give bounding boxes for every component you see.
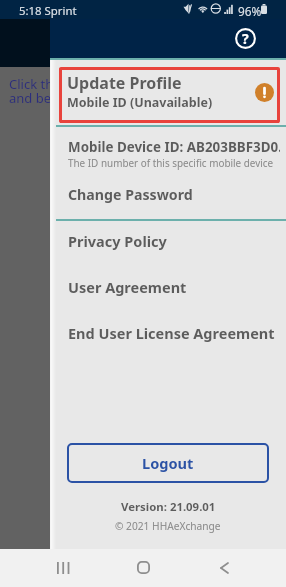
staticText: Privacy Policy [68,231,167,251]
staticText: 5:18 Sprint [19,3,77,19]
staticText: © 2021 HHAeXchange [115,519,221,533]
staticText: 96% [238,3,262,19]
button[interactable]: End User License Agreement [50,313,286,359]
button[interactable]: User Agreement [50,267,286,313]
staticText: Version: 21.09.01 [121,499,216,515]
staticText: User Agreement [68,277,187,297]
button[interactable]: Help [234,27,256,49]
button[interactable]: Update Profile [59,67,280,123]
staticText: End User License Agreement [68,323,275,343]
button[interactable]: Back [207,551,241,585]
staticText: ? [242,29,249,48]
staticText: Click the [9,75,61,93]
staticText: and bec [9,89,58,107]
staticText: The ID number of this specific mobile de… [68,156,274,169]
button[interactable]: Home [126,550,160,584]
staticText: Update Profile [67,72,182,94]
staticText: Mobile Device ID: AB203BBF3D0... [68,138,280,156]
button[interactable]: Mobile Device ID: AB203BBF3D0... [50,127,286,170]
button[interactable]: Recents [46,551,80,585]
staticText: Logout [142,453,194,473]
staticText: Change Password [68,185,193,204]
staticText: Mobile ID (Unavailable) [67,94,213,111]
button[interactable]: Logout [67,443,269,483]
button[interactable]: Change Password [50,170,286,219]
button[interactable]: Privacy Policy [50,221,286,267]
